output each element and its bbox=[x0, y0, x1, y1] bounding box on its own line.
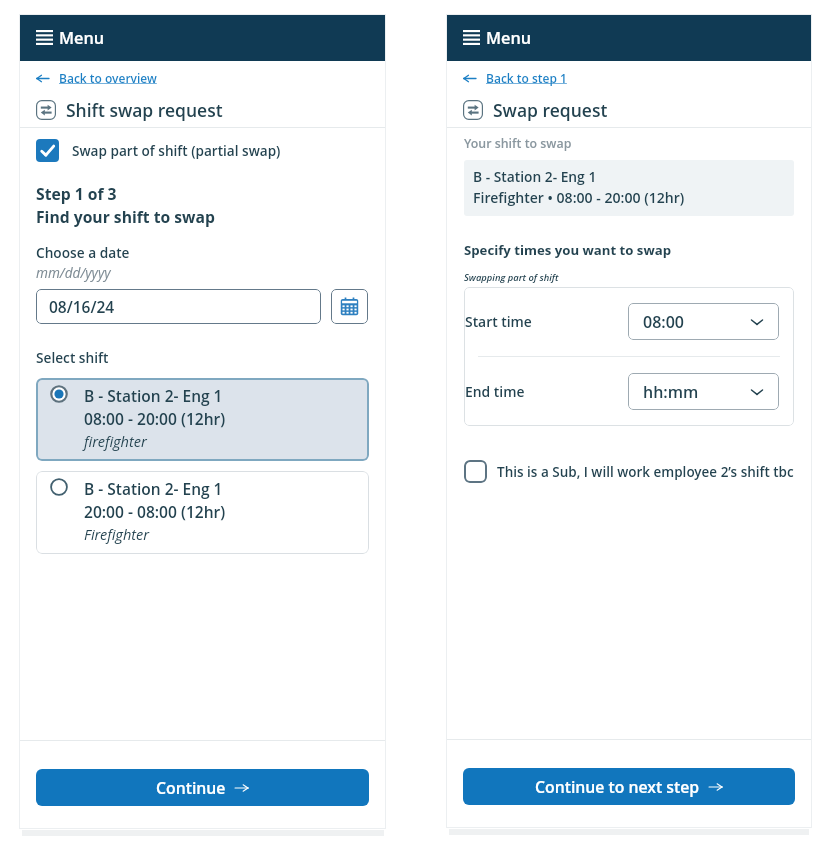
button[interactable]: Open calendar bbox=[331, 289, 368, 324]
button[interactable]: Back to overview bbox=[36, 68, 165, 88]
staticText: 20:00 - 08:00 (12hr) bbox=[84, 501, 226, 522]
button[interactable]: Menu bbox=[446, 14, 812, 61]
staticText: 08/16/24 bbox=[49, 296, 115, 317]
staticText: Choose a date bbox=[36, 243, 130, 262]
button[interactable]: Back to step 1 bbox=[463, 68, 575, 88]
staticText: Find your shift to swap bbox=[36, 206, 215, 227]
staticText: End time bbox=[465, 382, 525, 401]
staticText: Firefighter bbox=[84, 524, 150, 544]
staticText: B - Station 2- Eng 1 bbox=[473, 167, 597, 186]
staticText: Select shift bbox=[36, 348, 109, 367]
staticText: Your shift to swap bbox=[464, 135, 572, 152]
staticText: Menu bbox=[59, 27, 105, 49]
staticText: Specify times you want to swap bbox=[464, 241, 672, 259]
staticText: Back to step 1 bbox=[486, 70, 567, 86]
staticText: Start time bbox=[465, 312, 532, 331]
button[interactable]: Continue bbox=[36, 769, 369, 806]
staticText: Firefighter • 08:00 - 20:00 (12hr) bbox=[473, 188, 685, 207]
button[interactable]: 08/16/24 bbox=[36, 289, 321, 324]
button[interactable]: Continue to next step bbox=[463, 768, 795, 805]
button[interactable]: B - Station 2- Eng 1 bbox=[36, 378, 369, 461]
staticText: B - Station 2- Eng 1 bbox=[84, 478, 223, 499]
staticText: 08:00 - 20:00 (12hr) bbox=[84, 408, 226, 429]
button[interactable]: 08:00 bbox=[628, 303, 779, 340]
staticText: mm/dd/yyyy bbox=[36, 263, 111, 282]
button[interactable]: Swap part of shift (partial swap) bbox=[36, 139, 281, 162]
staticText: firefighter bbox=[84, 431, 147, 451]
staticText: Continue bbox=[156, 777, 226, 799]
button[interactable]: hh:mm bbox=[628, 373, 779, 410]
staticText: hh:mm bbox=[643, 381, 699, 403]
staticText: Swapping part of shift bbox=[464, 271, 559, 284]
staticText: Continue to next step bbox=[535, 776, 700, 798]
button[interactable]: B - Station 2- Eng 1 bbox=[36, 471, 369, 554]
button[interactable]: Menu bbox=[19, 14, 386, 61]
staticText: Menu bbox=[486, 27, 532, 49]
staticText: 08:00 bbox=[643, 311, 684, 333]
staticText: Back to overview bbox=[59, 70, 157, 86]
button[interactable]: This is a Sub, I will work employee 2’s … bbox=[464, 460, 794, 483]
staticText: B - Station 2- Eng 1 bbox=[84, 385, 223, 406]
staticText: Shift swap request bbox=[66, 98, 223, 122]
staticText: Swap request bbox=[493, 98, 608, 122]
staticText: Step 1 of 3 bbox=[36, 183, 117, 204]
staticText: This is a Sub, I will work employee 2’s … bbox=[497, 463, 794, 481]
staticText: Swap part of shift (partial swap) bbox=[72, 141, 281, 160]
